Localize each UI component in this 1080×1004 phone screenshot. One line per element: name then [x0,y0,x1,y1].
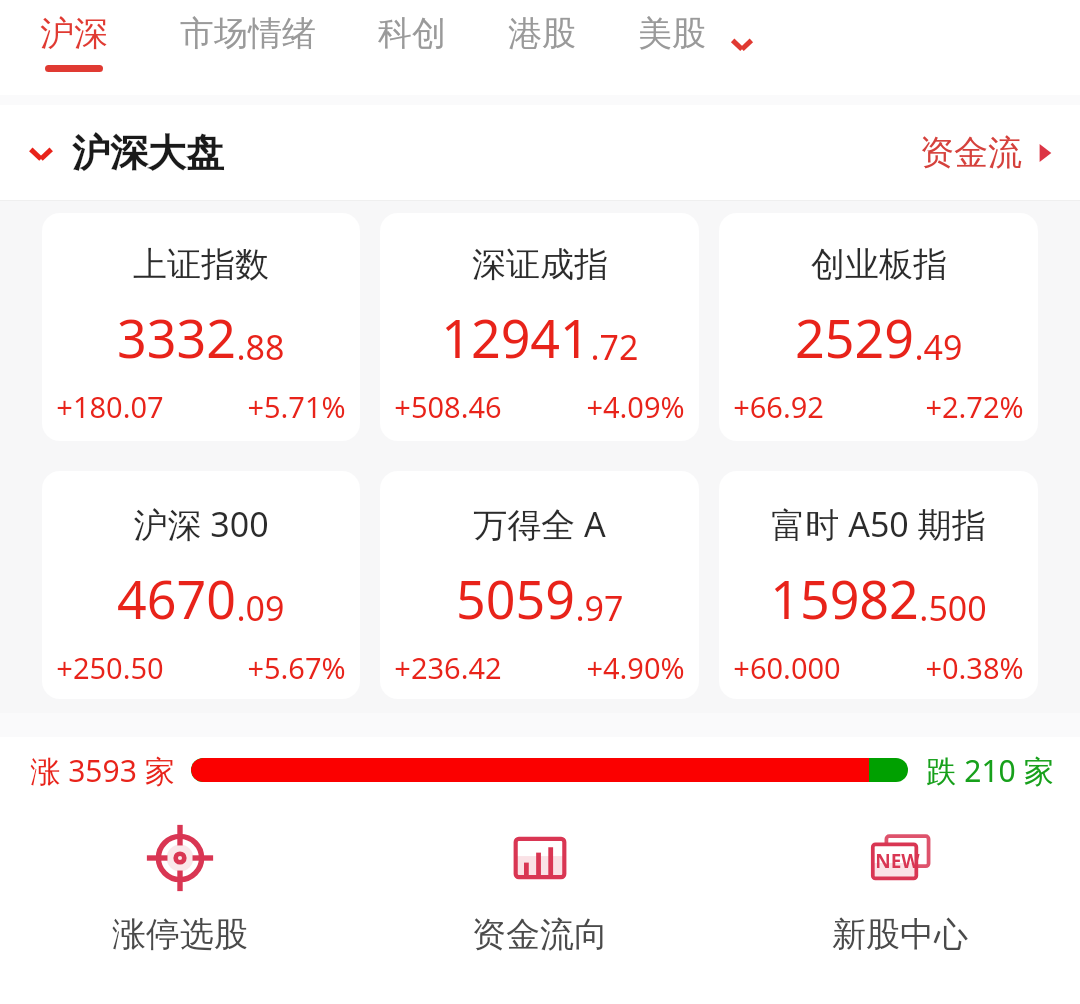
staticText: 富时 A50 期指 [771,501,986,547]
staticText: +4.09% [586,387,685,426]
staticText: .49 [914,324,963,370]
staticText: 12941 [441,302,590,373]
button[interactable]: More tabs [720,22,764,66]
staticText: 市场情绪 [180,12,316,55]
staticText: .500 [919,585,987,631]
button[interactable]: 创业板指 [719,213,1038,441]
staticText: 沪深 300 [133,501,269,547]
staticText: 2529 [795,302,914,373]
staticText: +60.000 [733,648,841,687]
button[interactable]: 港股 [508,0,576,78]
staticText: 新股中心 [832,913,968,956]
button[interactable]: 涨停选股 [0,803,360,966]
staticText: +0.38% [925,648,1024,687]
staticText: +2.72% [925,387,1024,426]
button[interactable]: NEW [720,803,1080,966]
staticText: +180.07 [56,387,164,426]
button[interactable]: 万得全 A [380,471,699,699]
button[interactable]: 美股 [638,0,706,78]
staticText: 15982 [770,563,919,634]
staticText: 沪深大盘 [72,129,224,177]
staticText: .97 [575,585,624,631]
button[interactable]: 深证成指 [380,213,699,441]
staticText: 创业板指 [811,243,947,286]
button[interactable]: 上证指数 [42,213,360,441]
button[interactable]: 沪深 [40,0,108,78]
button[interactable]: 科创 [378,0,446,78]
staticText: 上证指数 [133,243,269,286]
button[interactable]: 资金流 [920,125,1080,180]
staticText: +250.50 [56,648,164,687]
staticText: 科创 [378,12,446,55]
staticText: 涨 3593 家 [30,750,175,791]
staticText: 沪深 [40,12,108,55]
staticText: .09 [236,585,285,631]
staticText: 美股 [638,12,706,55]
button[interactable]: 市场情绪 [180,0,316,78]
staticText: 港股 [508,12,576,55]
staticText: 3332 [117,302,236,373]
button[interactable]: 资金流向 [360,803,720,966]
staticText: +508.46 [394,387,502,426]
staticText: 跌 210 家 [926,750,1054,791]
staticText: +5.67% [247,648,346,687]
button[interactable]: 沪深 300 [42,471,360,699]
staticText: +4.90% [586,648,685,687]
staticText: +5.71% [247,387,346,426]
staticText: 5059 [456,563,575,634]
button[interactable]: 沪深大盘 [0,123,232,183]
staticText: 涨停选股 [112,913,248,956]
staticText: 资金流 [920,131,1022,174]
staticText: NEW [875,848,920,874]
staticText: 深证成指 [472,243,608,286]
staticText: .88 [236,324,285,370]
staticText: 4670 [117,563,236,634]
staticText: 万得全 A [473,501,606,547]
button[interactable]: 富时 A50 期指 [719,471,1038,699]
staticText: +66.92 [733,387,824,426]
staticText: +236.42 [394,648,502,687]
staticText: 资金流向 [472,913,608,956]
staticText: .72 [590,324,639,370]
